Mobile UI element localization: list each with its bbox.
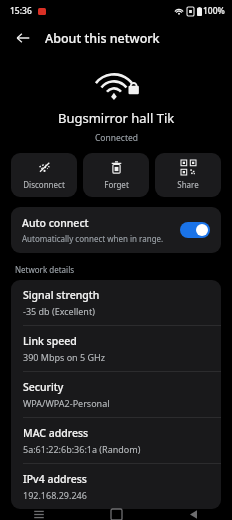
staticText: -35 db (Excellent) — [23, 305, 95, 317]
button[interactable]: Back — [155, 509, 232, 520]
staticText: About this network — [45, 30, 160, 47]
button[interactable]: IPv4 address — [11, 464, 221, 509]
staticText: WPA/WPA2-Personal — [23, 397, 110, 409]
staticText: MAC address — [23, 426, 89, 440]
staticText: 15:36 — [10, 5, 32, 17]
button[interactable]: Disconnect — [11, 153, 77, 197]
button[interactable]: Forget — [83, 153, 149, 197]
button[interactable]: Link speed — [11, 326, 221, 371]
staticText: Signal strength — [23, 288, 100, 302]
staticText: Link speed — [23, 334, 77, 348]
staticText: Security — [23, 380, 64, 394]
button[interactable]: Security — [11, 372, 221, 417]
staticText: Disconnect — [23, 179, 65, 190]
button[interactable]: Auto connect — [11, 207, 221, 253]
button[interactable]: Recent apps — [0, 509, 78, 520]
button[interactable]: Signal strength — [11, 280, 221, 325]
staticText: 192.168.29.246 — [23, 489, 87, 501]
staticText: 5a:61:22:6b:36:1a (Random) — [23, 443, 141, 455]
staticText: Network details — [15, 264, 75, 275]
staticText: Share — [177, 179, 199, 190]
button[interactable]: Home — [78, 509, 155, 520]
button[interactable]: Share — [155, 153, 221, 197]
staticText: 100% — [203, 5, 225, 17]
staticText: Connected — [95, 132, 138, 144]
staticText: 390 Mbps on 5 GHz — [23, 351, 105, 363]
staticText: Automatically connect when in range. — [22, 233, 164, 244]
button[interactable]: Back — [11, 26, 35, 50]
staticText: Forget — [104, 179, 129, 190]
staticText: Auto connect — [22, 216, 89, 230]
staticText: Bugsmirror hall Tik — [58, 109, 175, 127]
button[interactable]: MAC address — [11, 418, 221, 463]
staticText: IPv4 address — [23, 472, 87, 486]
button[interactable]: Auto connect toggle — [180, 222, 210, 238]
